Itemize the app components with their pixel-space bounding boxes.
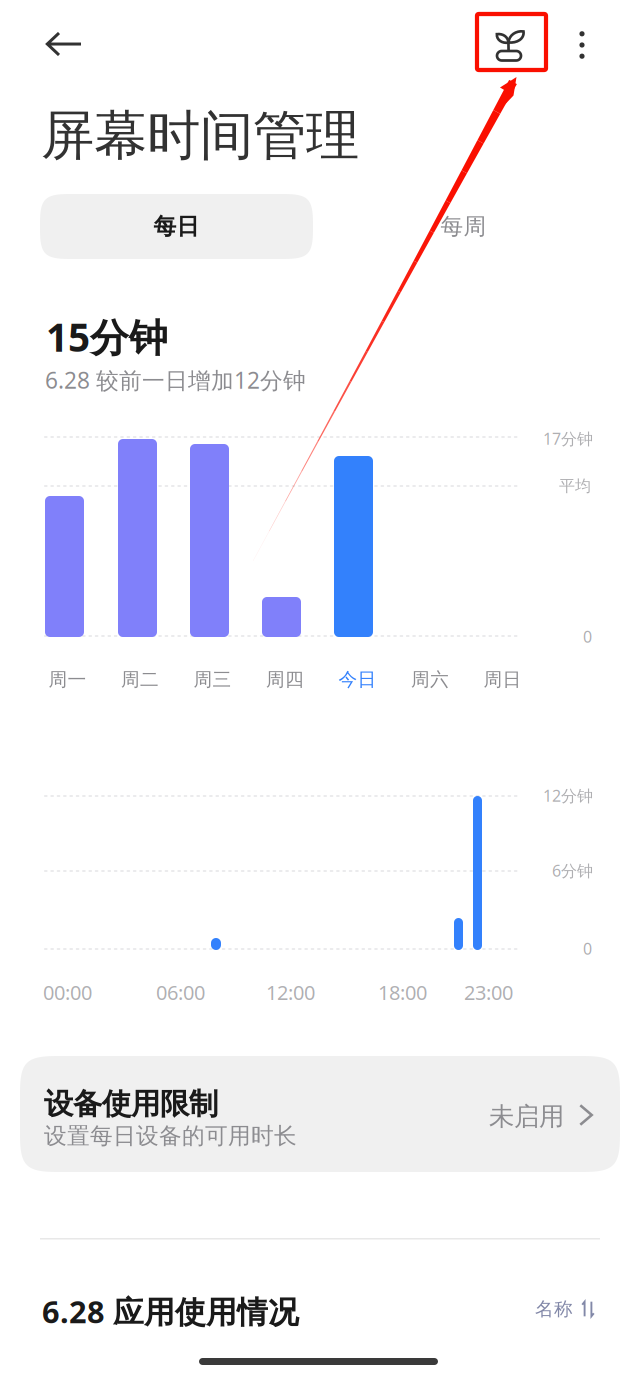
staticText: 6.28 应用使用情况 <box>42 1291 299 1332</box>
staticText: 名称 <box>535 1297 573 1320</box>
staticText: 6.28 较前一日增加12分钟 <box>45 365 306 395</box>
staticText: 12:00 <box>266 979 315 1006</box>
staticText: 未启用 <box>489 1101 564 1132</box>
staticText: 设置每日设备的可用时长 <box>44 1122 297 1150</box>
staticText: 23:00 <box>464 979 513 1006</box>
button[interactable]: 设备使用限制 <box>20 1056 620 1172</box>
staticText: 周四 <box>266 668 304 691</box>
button[interactable]: 更多 <box>560 17 604 73</box>
staticText: 屏幕时间管理 <box>41 103 359 168</box>
staticText: 周六 <box>411 668 449 691</box>
button[interactable]: 名称 <box>517 1289 595 1329</box>
staticText: 18:00 <box>378 979 427 1006</box>
button[interactable]: 每周 <box>327 194 600 259</box>
staticText: 0 <box>583 626 592 647</box>
button[interactable]: 护眼模式 <box>476 17 546 74</box>
staticText: 周一 <box>48 668 86 691</box>
staticText: 平均 <box>559 476 591 496</box>
staticText: 周三 <box>193 668 231 691</box>
staticText: 15分钟 <box>46 311 168 362</box>
staticText: 6分钟 <box>552 860 593 881</box>
staticText: 0 <box>583 938 592 959</box>
button[interactable]: 每日 <box>40 194 313 259</box>
staticText: 今日 <box>338 668 376 691</box>
staticText: 17分钟 <box>543 428 593 449</box>
staticText: 周日 <box>483 668 521 691</box>
staticText: 12分钟 <box>543 785 593 806</box>
button[interactable]: 返回 <box>32 16 96 72</box>
staticText: 06:00 <box>156 979 205 1006</box>
staticText: 每日 <box>153 213 199 240</box>
staticText: 周二 <box>121 668 159 691</box>
staticText: 每周 <box>440 213 486 240</box>
staticText: 设备使用限制 <box>44 1086 218 1122</box>
staticText: 00:00 <box>43 979 92 1006</box>
